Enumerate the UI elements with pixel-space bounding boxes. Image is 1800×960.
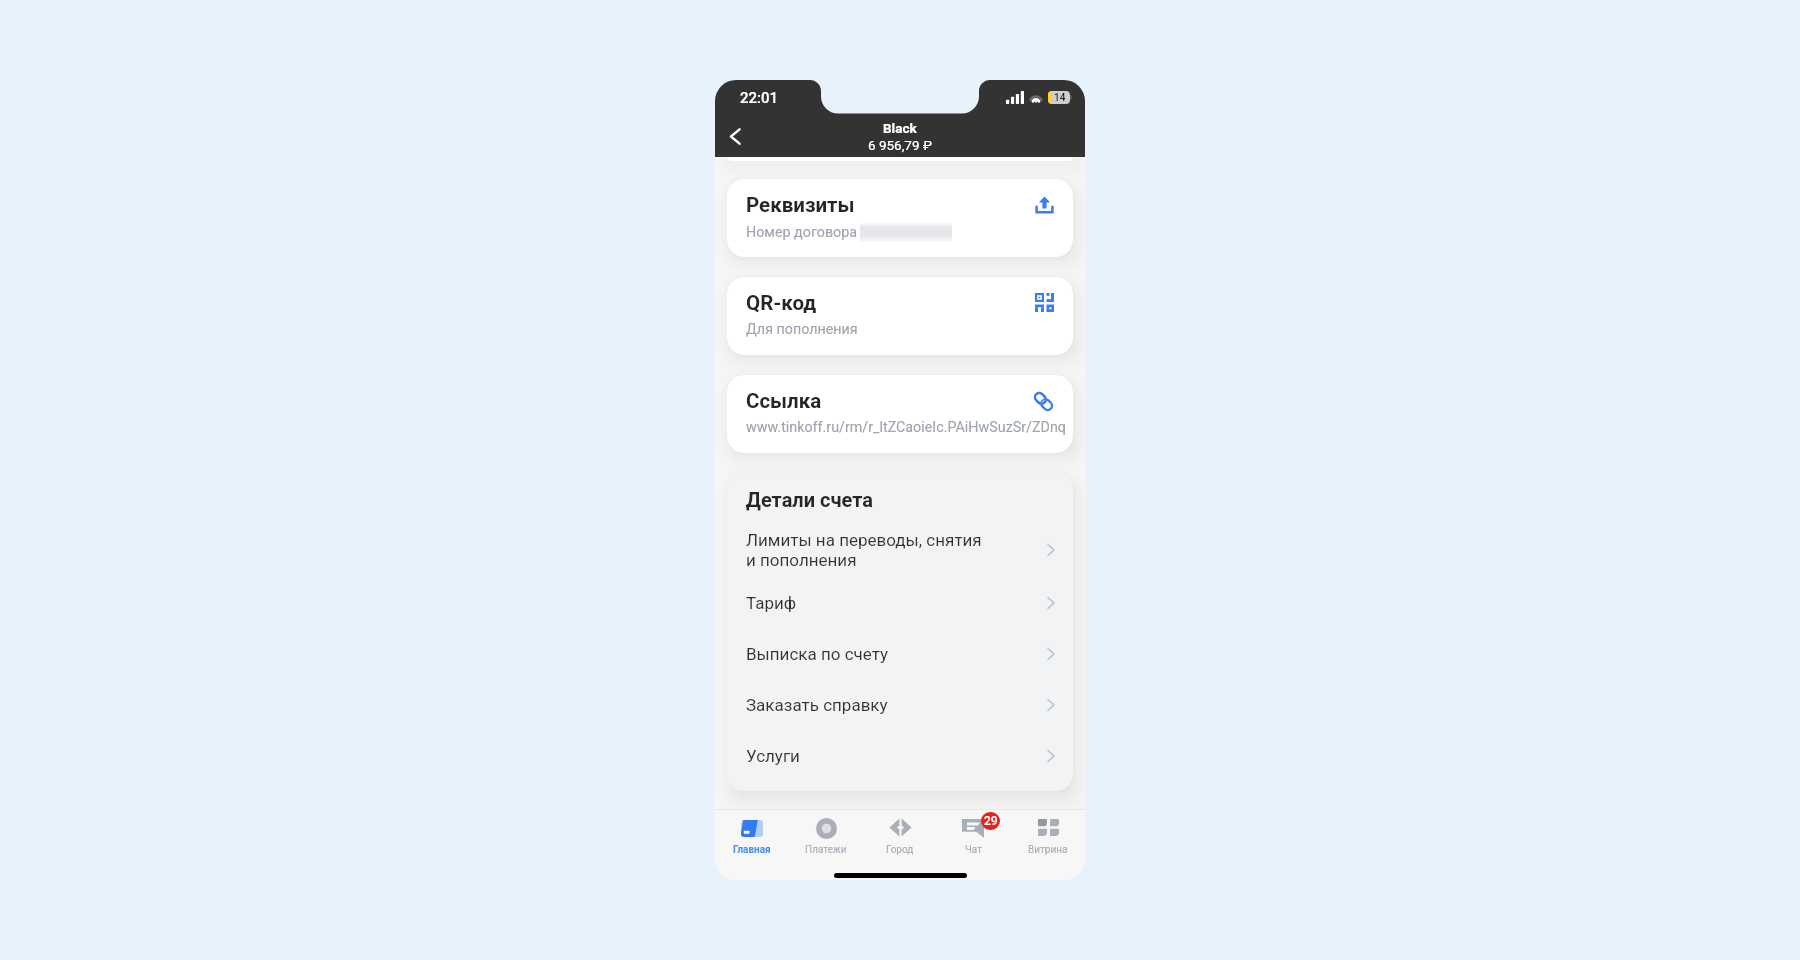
staticText: Black	[883, 120, 917, 136]
button[interactable]: Услуги	[727, 730, 1073, 781]
staticText: Ссылка	[746, 389, 822, 413]
button[interactable]: Платежи	[789, 810, 863, 855]
staticText: Город	[886, 844, 914, 855]
button[interactable]: Скопировать ссылку	[1033, 391, 1054, 412]
staticText: Чат	[965, 844, 983, 855]
staticText: Реквизиты	[746, 193, 855, 217]
button[interactable]: Витрина	[1011, 810, 1085, 855]
staticText: Для пополнения	[746, 321, 858, 338]
staticText: 6 956,79 ₽	[868, 137, 932, 153]
button[interactable]: Город	[863, 810, 937, 855]
staticText: Витрина	[1028, 844, 1068, 855]
button[interactable]: Главная	[715, 810, 789, 855]
button[interactable]: Ссылка	[727, 375, 1073, 453]
button[interactable]: 29	[937, 810, 1011, 855]
button[interactable]: Выписка по счету	[727, 628, 1073, 679]
staticText: 22:01	[740, 89, 779, 107]
staticText: Лимиты на переводы, снятия и пополнения	[746, 530, 1047, 570]
staticText: QR-код	[746, 291, 817, 315]
button[interactable]: Поделиться реквизитами	[1035, 195, 1054, 214]
button[interactable]: Заказать справку	[727, 679, 1073, 730]
button[interactable]: QR-код	[727, 277, 1073, 355]
staticText: Услуги	[746, 746, 1047, 766]
staticText: Главная	[733, 844, 771, 855]
staticText: 29	[984, 814, 998, 828]
staticText: Тариф	[746, 593, 1047, 613]
staticText: Платежи	[805, 844, 847, 855]
button[interactable]: Показать QR-код	[1035, 293, 1054, 312]
staticText: 14	[1054, 92, 1066, 104]
button[interactable]: Тариф	[727, 577, 1073, 628]
staticText: Выписка по счету	[746, 644, 1047, 664]
staticText: Заказать справку	[746, 695, 1047, 715]
staticText: Номер договора	[746, 224, 858, 241]
button[interactable]: Back	[715, 116, 755, 156]
button[interactable]: Лимиты на переводы, снятия и пополнения	[727, 523, 1073, 577]
button[interactable]: Реквизиты	[727, 179, 1073, 257]
staticText: Детали счета	[746, 488, 873, 511]
staticText: www.tinkoff.ru/rm/r_ltZCaoieIc.PAiHwSuzS…	[746, 419, 1066, 436]
